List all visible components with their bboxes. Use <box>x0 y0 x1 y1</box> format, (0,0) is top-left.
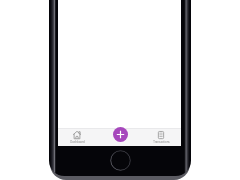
button[interactable]: Add transaction <box>113 127 128 142</box>
staticText: Dashboard <box>70 140 85 144</box>
button[interactable]: Dashboard <box>65 128 89 146</box>
staticText: Transactions <box>153 140 170 144</box>
button[interactable]: Home <box>110 150 131 171</box>
button[interactable]: Transactions <box>147 128 175 146</box>
